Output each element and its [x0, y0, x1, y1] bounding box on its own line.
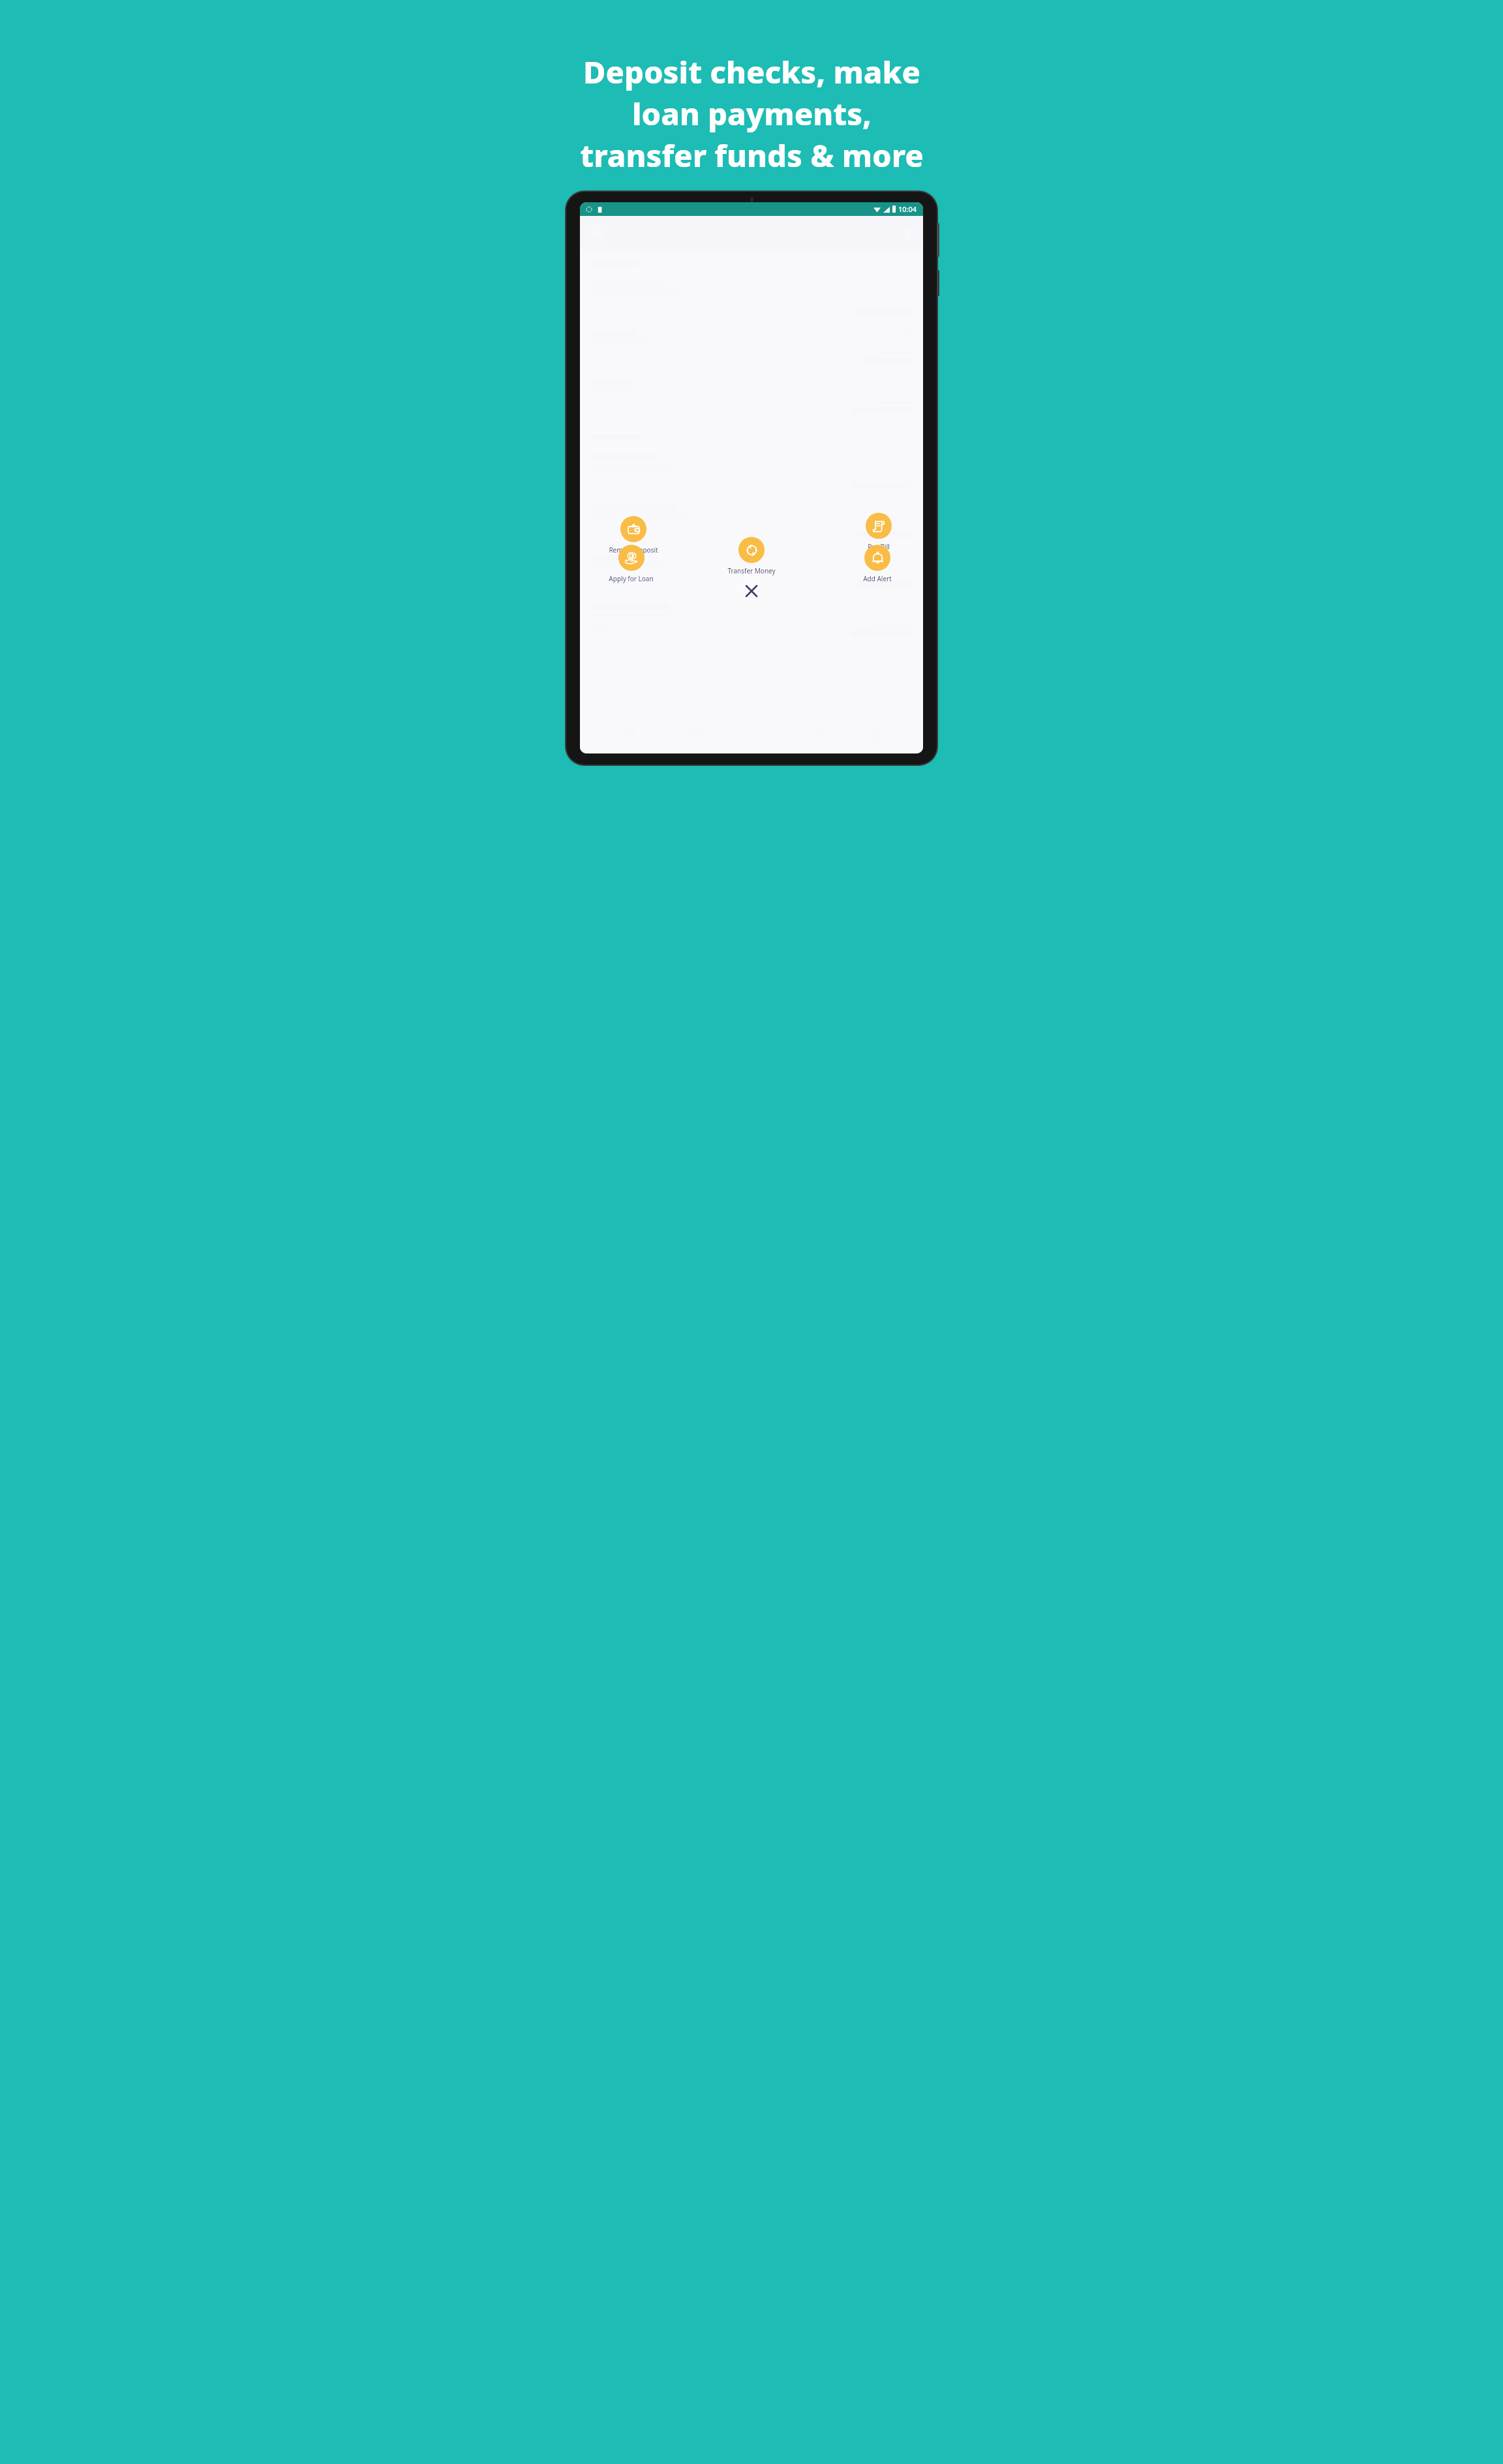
staticText: Transfer Money — [727, 566, 776, 575]
button[interactable]: Add Alert — [860, 545, 894, 583]
button[interactable]: Close menu — [737, 577, 766, 605]
staticText: Deposit checks, make — [583, 51, 920, 93]
staticText: Pay Bill — [868, 542, 890, 551]
button[interactable]: Remote Deposit — [606, 516, 661, 555]
staticText: Remote Deposit — [609, 545, 658, 555]
button[interactable]: Apply for Loan — [606, 545, 656, 583]
staticText: Add Alert — [863, 574, 892, 583]
staticText: 10:04 — [898, 204, 917, 214]
staticText: Apply for Loan — [609, 574, 654, 583]
button[interactable]: Transfer Money — [725, 537, 778, 575]
staticText: loan payments, — [632, 93, 872, 134]
staticText: transfer funds & more — [580, 134, 924, 176]
button[interactable]: Pay Bill — [863, 513, 894, 551]
